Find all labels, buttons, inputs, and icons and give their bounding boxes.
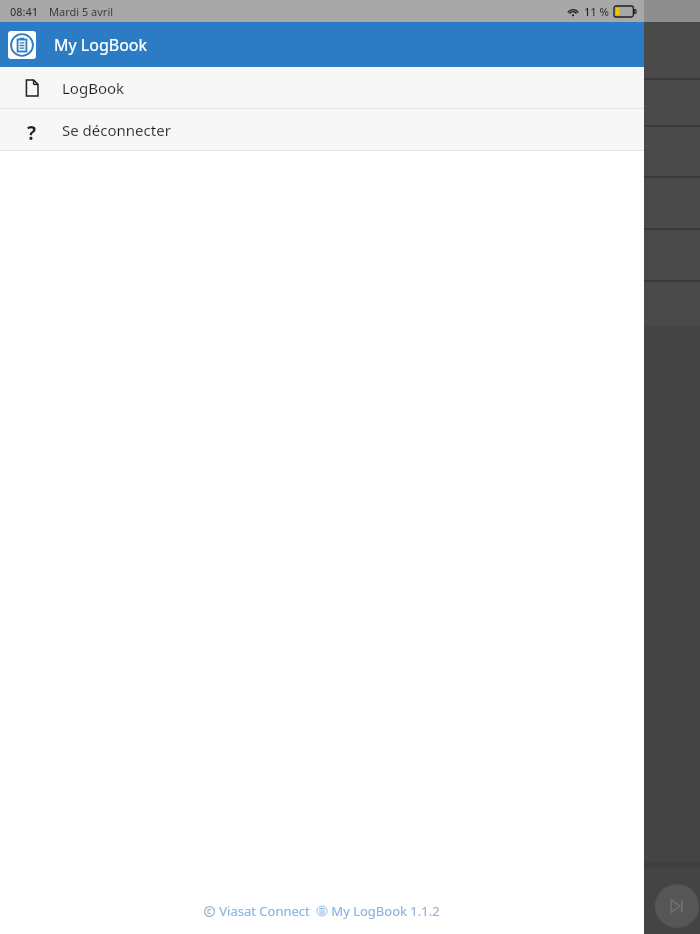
staticText: My LogBook 1.1.2 bbox=[331, 902, 440, 920]
staticText: Mardi 5 avril bbox=[49, 4, 114, 19]
staticText: 11 % bbox=[584, 4, 609, 19]
button[interactable]: Next bbox=[655, 884, 699, 928]
button[interactable]: My LogBook bbox=[0, 22, 644, 67]
staticText: Viasat Connect bbox=[219, 902, 310, 920]
staticText: Se déconnecter bbox=[62, 120, 171, 140]
staticText: My LogBook bbox=[54, 34, 148, 56]
staticText: ? bbox=[27, 120, 37, 140]
button[interactable]: ? bbox=[0, 109, 644, 150]
staticText: 08:41 bbox=[10, 4, 39, 19]
button[interactable]: LogBook bbox=[0, 67, 644, 108]
staticText: LogBook bbox=[62, 78, 125, 98]
